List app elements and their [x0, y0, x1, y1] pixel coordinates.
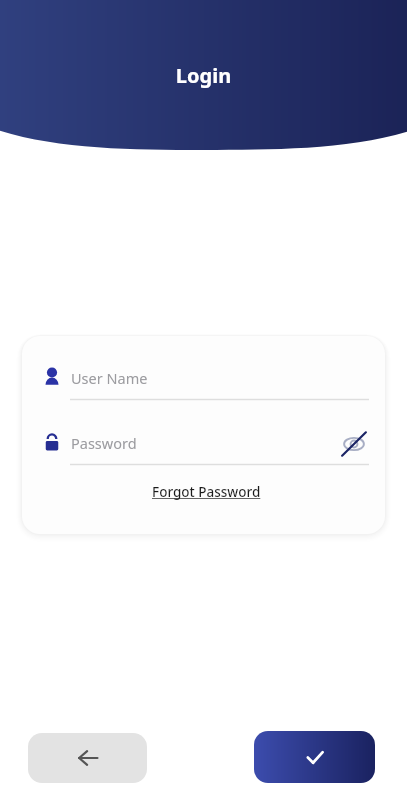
staticText: Password [71, 433, 137, 453]
button[interactable]: Back [28, 733, 147, 783]
staticText: Forgot Password [152, 483, 261, 501]
button[interactable]: Confirm [254, 731, 375, 783]
button[interactable]: Forgot Password [150, 480, 262, 504]
staticText: User Name [71, 368, 148, 388]
button[interactable]: User Name [38, 356, 369, 401]
button[interactable]: Show password [334, 424, 374, 464]
staticText: Login [0, 62, 407, 89]
button[interactable]: Password [38, 421, 369, 466]
